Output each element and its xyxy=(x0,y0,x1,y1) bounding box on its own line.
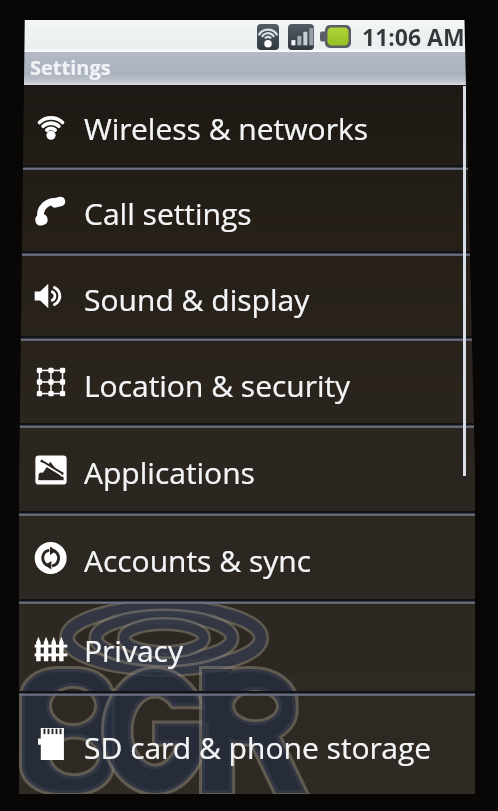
button[interactable]: Wireless & networks xyxy=(19,85,475,165)
button[interactable]: Location & security xyxy=(19,341,475,423)
button[interactable]: Call settings xyxy=(19,170,475,251)
staticText: Call settings xyxy=(84,193,252,234)
button[interactable]: SD card & phone storage xyxy=(19,696,475,792)
button[interactable]: Sound & display xyxy=(19,256,475,336)
button[interactable]: Privacy xyxy=(19,604,475,691)
staticText: Applications xyxy=(84,452,255,493)
staticText: 11:06 AM xyxy=(362,21,465,52)
staticText: Wireless & networks xyxy=(84,108,368,149)
button[interactable]: Applications xyxy=(19,428,475,511)
staticText: SD card & phone storage xyxy=(84,727,432,768)
staticText: Settings xyxy=(30,54,111,81)
staticText: Privacy xyxy=(84,630,184,671)
button[interactable]: Accounts & sync xyxy=(19,516,475,599)
staticText: Sound & display xyxy=(84,279,310,320)
staticText: Location & security xyxy=(84,365,351,406)
staticText: Accounts & sync xyxy=(84,540,312,581)
